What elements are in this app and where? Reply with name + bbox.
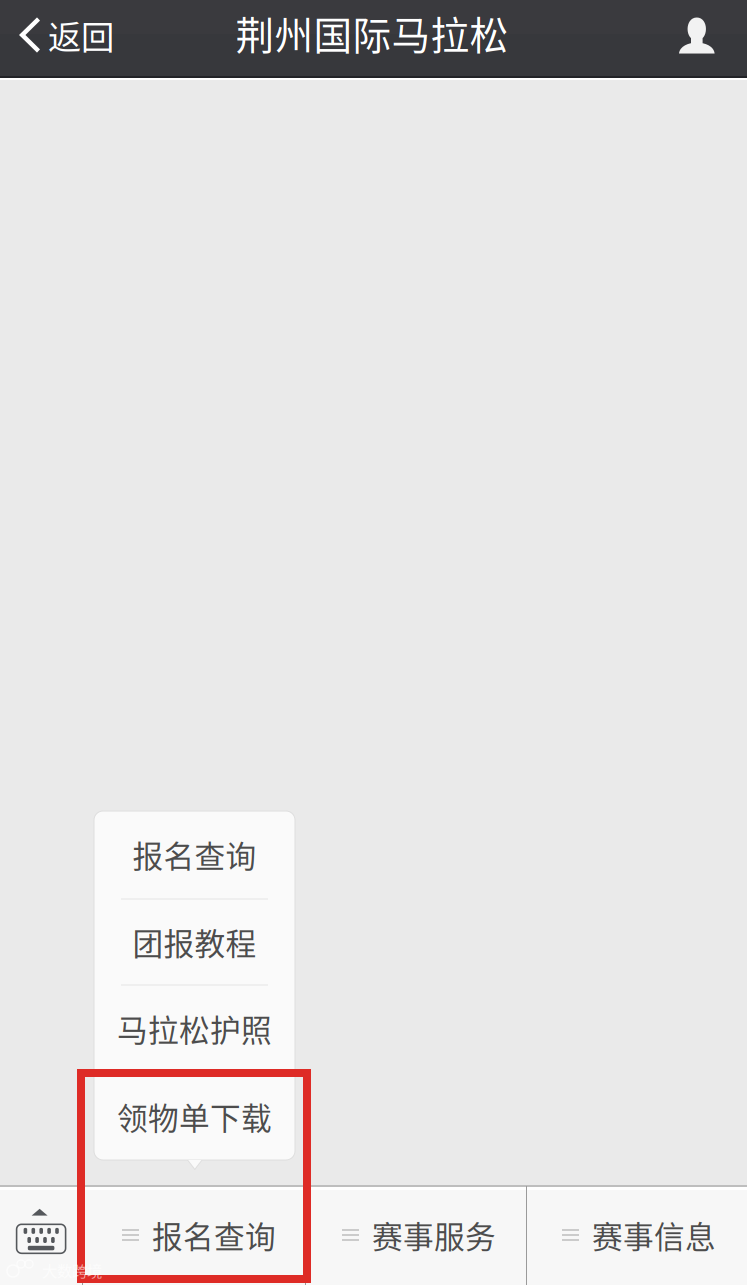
- button[interactable]: 团报教程: [94, 899, 295, 984]
- staticText: 报名查询: [132, 832, 256, 877]
- staticText: 团报教程: [132, 920, 256, 964]
- staticText: 大数跨境: [42, 1259, 102, 1281]
- staticText: 马拉松护照: [117, 1006, 272, 1051]
- button[interactable]: 马拉松护照: [94, 985, 295, 1071]
- staticText: 返回: [48, 11, 114, 59]
- staticText: 报名查询: [152, 1213, 276, 1257]
- button[interactable]: 报名查询: [88, 1186, 310, 1284]
- button[interactable]: 返回: [19, 0, 118, 70]
- staticText: 赛事信息: [592, 1213, 716, 1257]
- button[interactable]: 赛事服务: [309, 1186, 529, 1284]
- staticText: 荆州国际马拉松: [235, 5, 508, 61]
- staticText: 赛事服务: [372, 1213, 496, 1257]
- button[interactable]: Hide keyboard: [0, 1185, 747, 1285]
- button[interactable]: 领物单下载: [94, 1072, 295, 1160]
- button[interactable]: 赛事信息: [529, 1186, 747, 1284]
- button[interactable]: 报名查询: [94, 810, 295, 898]
- staticText: 领物单下载: [117, 1094, 272, 1139]
- button[interactable]: Account: [667, 0, 727, 70]
